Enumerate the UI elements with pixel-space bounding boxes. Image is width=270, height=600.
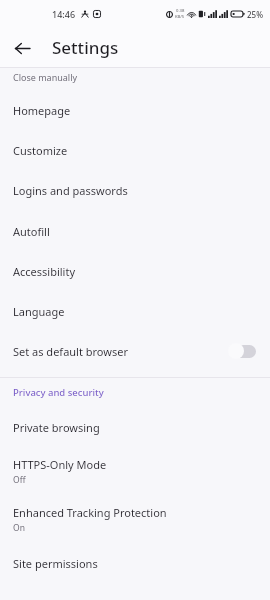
staticText: Off xyxy=(13,474,26,486)
staticText: Customize xyxy=(13,143,68,158)
button[interactable]: Enhanced Tracking Protection xyxy=(0,495,270,543)
button[interactable]: Close manually xyxy=(0,68,270,90)
button[interactable]: Accessibility xyxy=(0,251,270,291)
staticText: Enhanced Tracking Protection xyxy=(13,505,167,520)
staticText: Private browsing xyxy=(13,420,100,435)
button[interactable]: Language xyxy=(0,291,270,331)
staticText: Accessibility xyxy=(13,264,76,279)
staticText: KB/S xyxy=(175,14,185,20)
staticText: 25% xyxy=(247,9,263,20)
staticText: Set as default browser xyxy=(13,344,128,359)
button[interactable]: Homepage xyxy=(0,90,270,130)
staticText: 14:46 xyxy=(52,8,76,20)
button[interactable]: Logins and passwords xyxy=(0,170,270,211)
staticText: Homepage xyxy=(13,103,71,118)
button[interactable]: Site permissions xyxy=(0,543,270,583)
staticText: HTTPS-Only Mode xyxy=(13,457,107,472)
button[interactable]: Set as default browser xyxy=(0,331,270,371)
button[interactable]: Private browsing xyxy=(0,407,270,447)
staticText: Logins and passwords xyxy=(13,183,128,198)
staticText: Site permissions xyxy=(13,556,98,571)
button[interactable]: Customize xyxy=(0,130,270,170)
staticText: Close manually xyxy=(13,71,78,83)
staticText: Privacy and security xyxy=(13,386,104,399)
button[interactable]: Back xyxy=(6,32,38,64)
staticText: On xyxy=(13,522,25,534)
staticText: Autofill xyxy=(13,224,50,239)
staticText: Language xyxy=(13,304,65,319)
button[interactable]: Set as default browser toggle xyxy=(227,342,257,360)
button[interactable]: Autofill xyxy=(0,211,270,251)
staticText: 0.38 xyxy=(176,8,185,14)
staticText: Settings xyxy=(52,36,119,59)
button[interactable]: HTTPS-Only Mode xyxy=(0,447,270,495)
